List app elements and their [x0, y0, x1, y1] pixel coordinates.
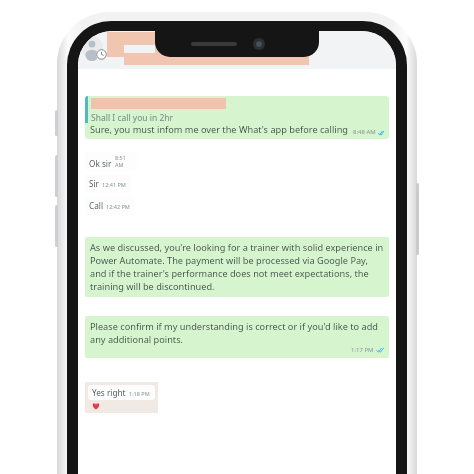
staticText: Ok sir — [89, 158, 112, 169]
staticText: 8:51 AM — [115, 154, 133, 168]
button[interactable]: Ok sir — [85, 152, 137, 171]
staticText: Sir — [89, 178, 99, 189]
staticText: Sure, you must infom me over the What's … — [90, 123, 348, 136]
staticText: Yes right — [92, 387, 126, 398]
staticText: 12:42 PM — [106, 203, 130, 210]
button[interactable]: Call — [85, 196, 134, 215]
staticText: 1:17 PM — [351, 346, 374, 354]
staticText: Please confirm if my understanding is co… — [90, 320, 384, 346]
staticText: 1:18 PM — [129, 390, 150, 397]
other: Contact profile photo — [81, 36, 103, 58]
staticText: Shall I call you in 2hr — [91, 112, 174, 123]
other: Disappearing messages — [96, 49, 107, 60]
button[interactable]: Shall I call you in 2hr — [85, 96, 389, 139]
button[interactable]: As we discussed, you're looking for a tr… — [85, 237, 389, 297]
staticText: 8:48 AM — [353, 128, 376, 136]
button[interactable]: Please confirm if my understanding is co… — [85, 316, 389, 358]
staticText: Call — [89, 200, 103, 211]
button[interactable]: Sir — [85, 174, 131, 193]
button[interactable]: Yes right — [85, 382, 158, 413]
staticText: 12:41 PM — [102, 181, 126, 188]
staticText: As we discussed, you're looking for a tr… — [90, 241, 384, 293]
